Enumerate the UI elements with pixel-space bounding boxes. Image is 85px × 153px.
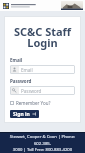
staticText: SC&C Staff Login (10, 24, 75, 51)
staticText: Stewart, Cooper & Coon | Phone: 602-385-… (2, 134, 83, 152)
staticText: Sign in (13, 111, 30, 118)
button[interactable]: Email (10, 65, 75, 74)
staticText: Email (10, 57, 23, 63)
staticText: Password (10, 78, 32, 84)
staticText: Password (21, 88, 42, 94)
staticText: Remember You? (16, 100, 51, 106)
button[interactable]: Sign in (10, 110, 39, 118)
staticText: Email (21, 67, 33, 73)
button[interactable]: Stewart Cooper & Coon home (2, 2, 38, 10)
button[interactable]: Password (10, 86, 75, 95)
button[interactable]: Remember You? (10, 99, 51, 107)
